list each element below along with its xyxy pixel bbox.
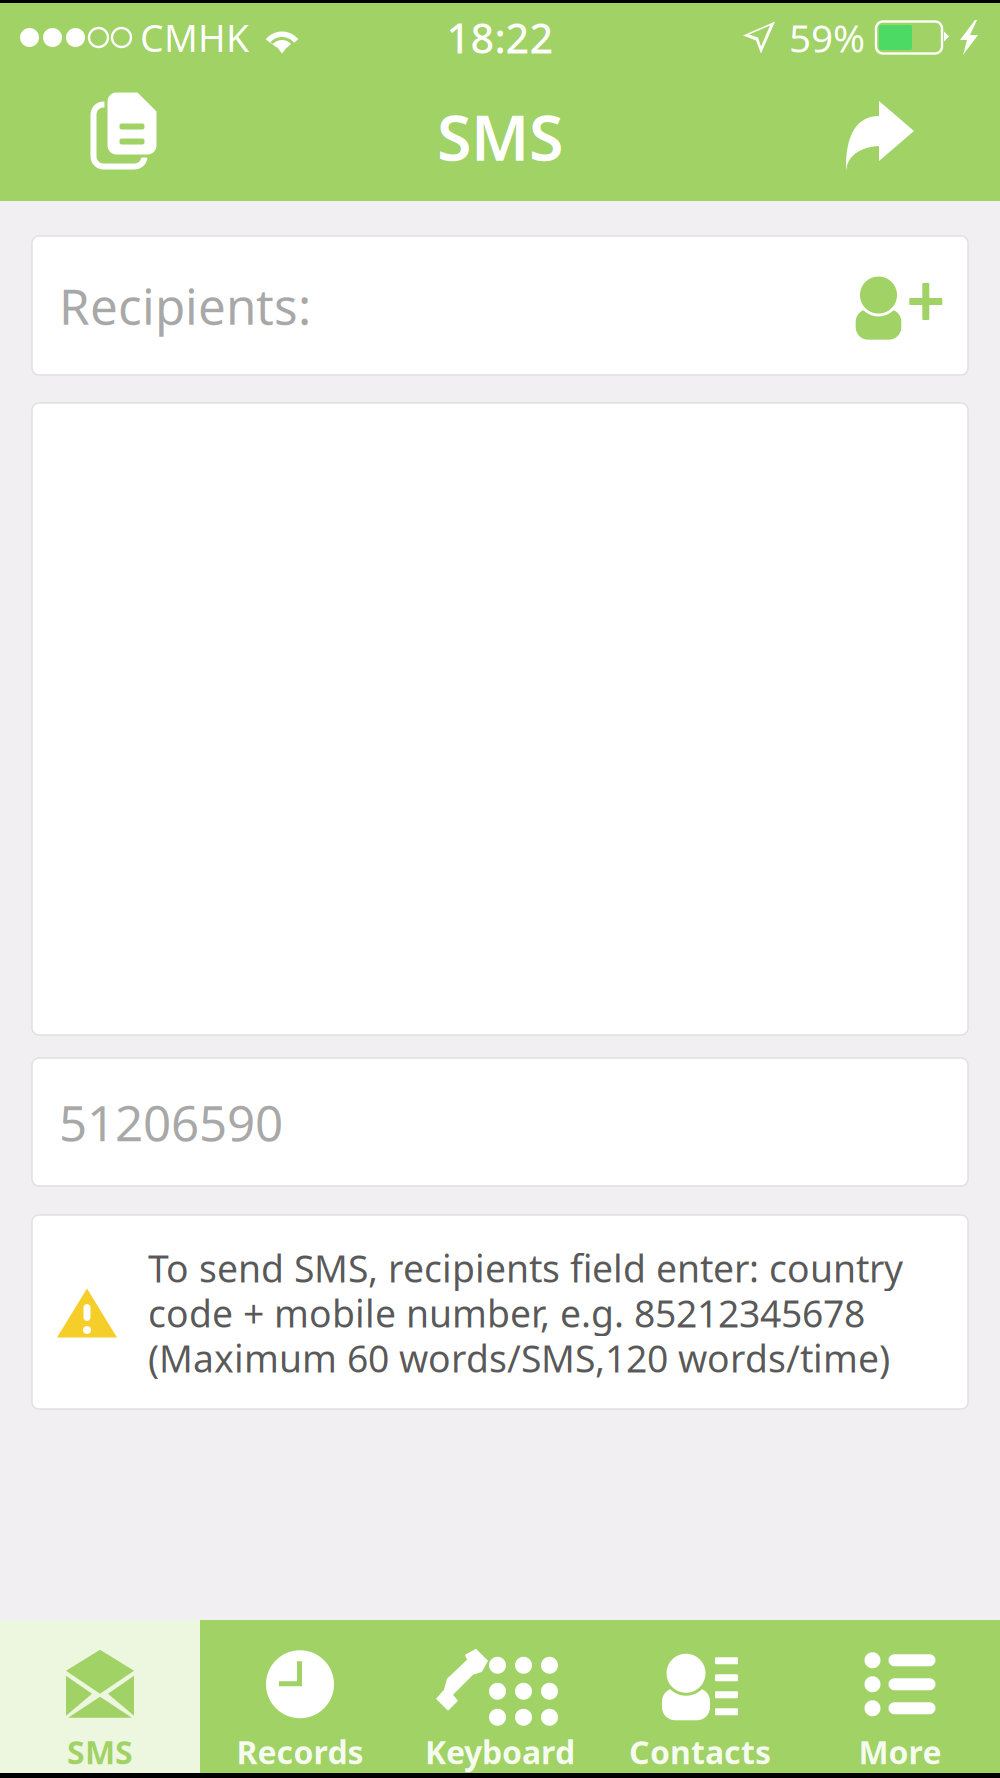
staticText: (Maximum 60 words/SMS,120 words/time) xyxy=(148,1333,890,1383)
button[interactable]: Keyboard xyxy=(400,1620,600,1773)
button[interactable]: More xyxy=(800,1620,1000,1773)
staticText: SMS xyxy=(67,1730,133,1773)
staticText: 59% xyxy=(789,12,865,63)
button[interactable]: Records xyxy=(200,1620,400,1773)
button[interactable]: SMS xyxy=(0,1620,200,1773)
button[interactable]: Contacts xyxy=(600,1620,800,1773)
staticText: 51206590 xyxy=(59,1089,283,1155)
staticText: CMHK xyxy=(140,13,249,62)
staticText: code + mobile number, e.g. 85212345678 xyxy=(148,1288,865,1338)
staticText: To send SMS, recipients field enter: cou… xyxy=(148,1243,903,1293)
staticText: Records xyxy=(236,1730,363,1773)
staticText: Contacts xyxy=(629,1730,771,1773)
button[interactable]: 51206590 xyxy=(32,1058,968,1186)
staticText: More xyxy=(858,1730,941,1773)
button[interactable]: Recipients: xyxy=(32,236,968,375)
staticText: Recipients: xyxy=(59,273,311,338)
staticText: SMS xyxy=(437,95,563,178)
button[interactable]: Drafts xyxy=(55,72,187,201)
button[interactable]: Send xyxy=(813,72,945,201)
staticText: 18:22 xyxy=(446,10,553,65)
staticText: Keyboard xyxy=(425,1730,575,1773)
